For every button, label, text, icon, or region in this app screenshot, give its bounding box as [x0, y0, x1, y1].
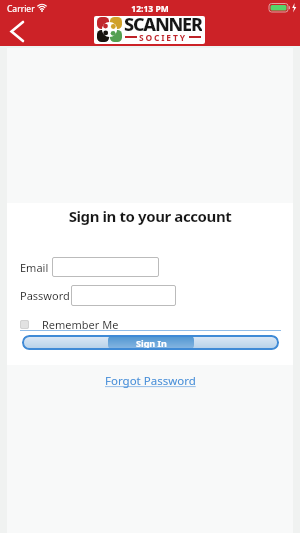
button[interactable]: SCANNER: [94, 16, 205, 44]
staticText: Sign In: [136, 337, 167, 349]
staticText: Password: [20, 288, 70, 303]
button[interactable]: Remember Me: [20, 317, 119, 331]
button[interactable]: [71, 285, 176, 306]
staticText: 12:13 PM: [0, 3, 300, 15]
button[interactable]: [2, 16, 34, 46]
staticText: Sign in to your account: [0, 206, 300, 226]
staticText: Remember Me: [42, 317, 119, 331]
button[interactable]: Sign In: [22, 335, 279, 350]
staticText: SOCIETY: [139, 32, 187, 41]
staticText: Carrier: [7, 3, 35, 15]
staticText: SCANNER: [124, 12, 202, 32]
button[interactable]: [52, 257, 159, 277]
button[interactable]: Forgot Password: [105, 373, 196, 389]
staticText: Email: [20, 260, 49, 275]
